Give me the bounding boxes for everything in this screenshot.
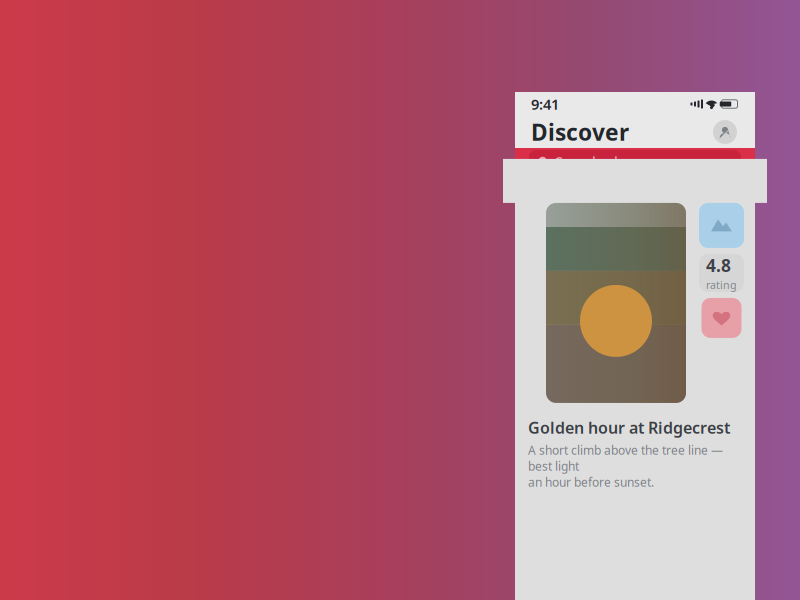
staticText: Search places	[555, 152, 648, 171]
staticText: rating	[706, 278, 737, 292]
staticText: A short climb above the tree line — best…	[528, 442, 723, 490]
button[interactable]: Save to favourites	[701, 298, 741, 338]
button[interactable]: Profile	[711, 118, 739, 146]
button[interactable]: Search places	[529, 150, 741, 173]
button[interactable]: Open photo	[546, 203, 686, 403]
staticText: Golden hour at Ridgecrest	[528, 417, 730, 438]
staticText: Discover	[531, 117, 629, 147]
button[interactable]: Map view	[699, 203, 744, 248]
staticText: 4.8	[706, 254, 731, 277]
staticText: 9:41	[531, 94, 559, 114]
